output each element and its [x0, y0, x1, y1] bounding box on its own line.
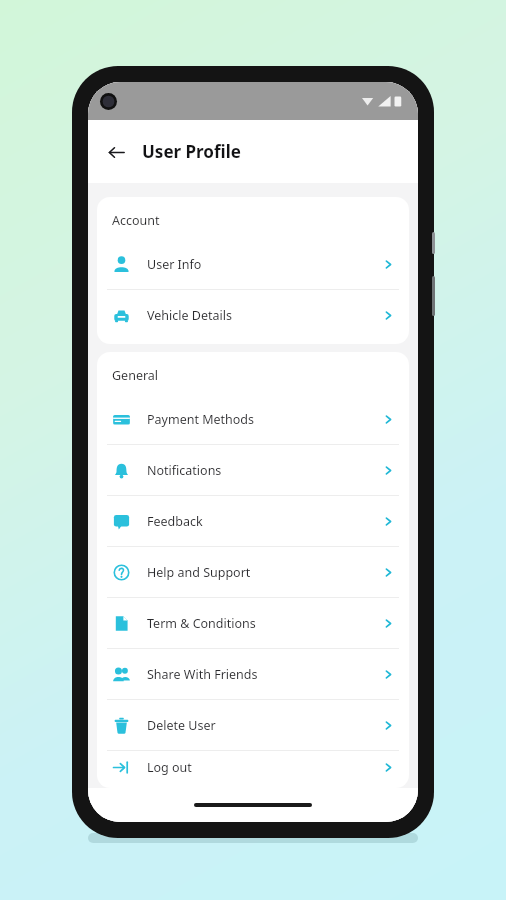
- staticText: Share With Friends: [147, 666, 258, 683]
- button[interactable]: Payment Methods: [97, 394, 409, 444]
- staticText: Delete User: [147, 717, 216, 734]
- button[interactable]: Share With Friends: [97, 649, 409, 699]
- staticText: Notifications: [147, 462, 222, 479]
- button[interactable]: Feedback: [97, 496, 409, 546]
- button[interactable]: User Info: [97, 239, 409, 289]
- staticText: Account: [112, 212, 160, 229]
- staticText: Term & Conditions: [147, 615, 256, 632]
- button[interactable]: Vehicle Details: [97, 290, 409, 340]
- button[interactable]: Term & Conditions: [97, 598, 409, 648]
- staticText: Log out: [147, 759, 192, 776]
- staticText: General: [112, 367, 159, 384]
- button[interactable]: Back: [102, 138, 130, 166]
- staticText: Payment Methods: [147, 411, 255, 428]
- staticText: Help and Support: [147, 564, 251, 581]
- staticText: User Info: [147, 256, 202, 273]
- button[interactable]: Delete User: [97, 700, 409, 750]
- button[interactable]: Log out: [97, 751, 409, 784]
- button[interactable]: Notifications: [97, 445, 409, 495]
- staticText: User Profile: [142, 140, 241, 163]
- staticText: Feedback: [147, 513, 203, 530]
- button[interactable]: Help and Support: [97, 547, 409, 597]
- staticText: Vehicle Details: [147, 307, 232, 324]
